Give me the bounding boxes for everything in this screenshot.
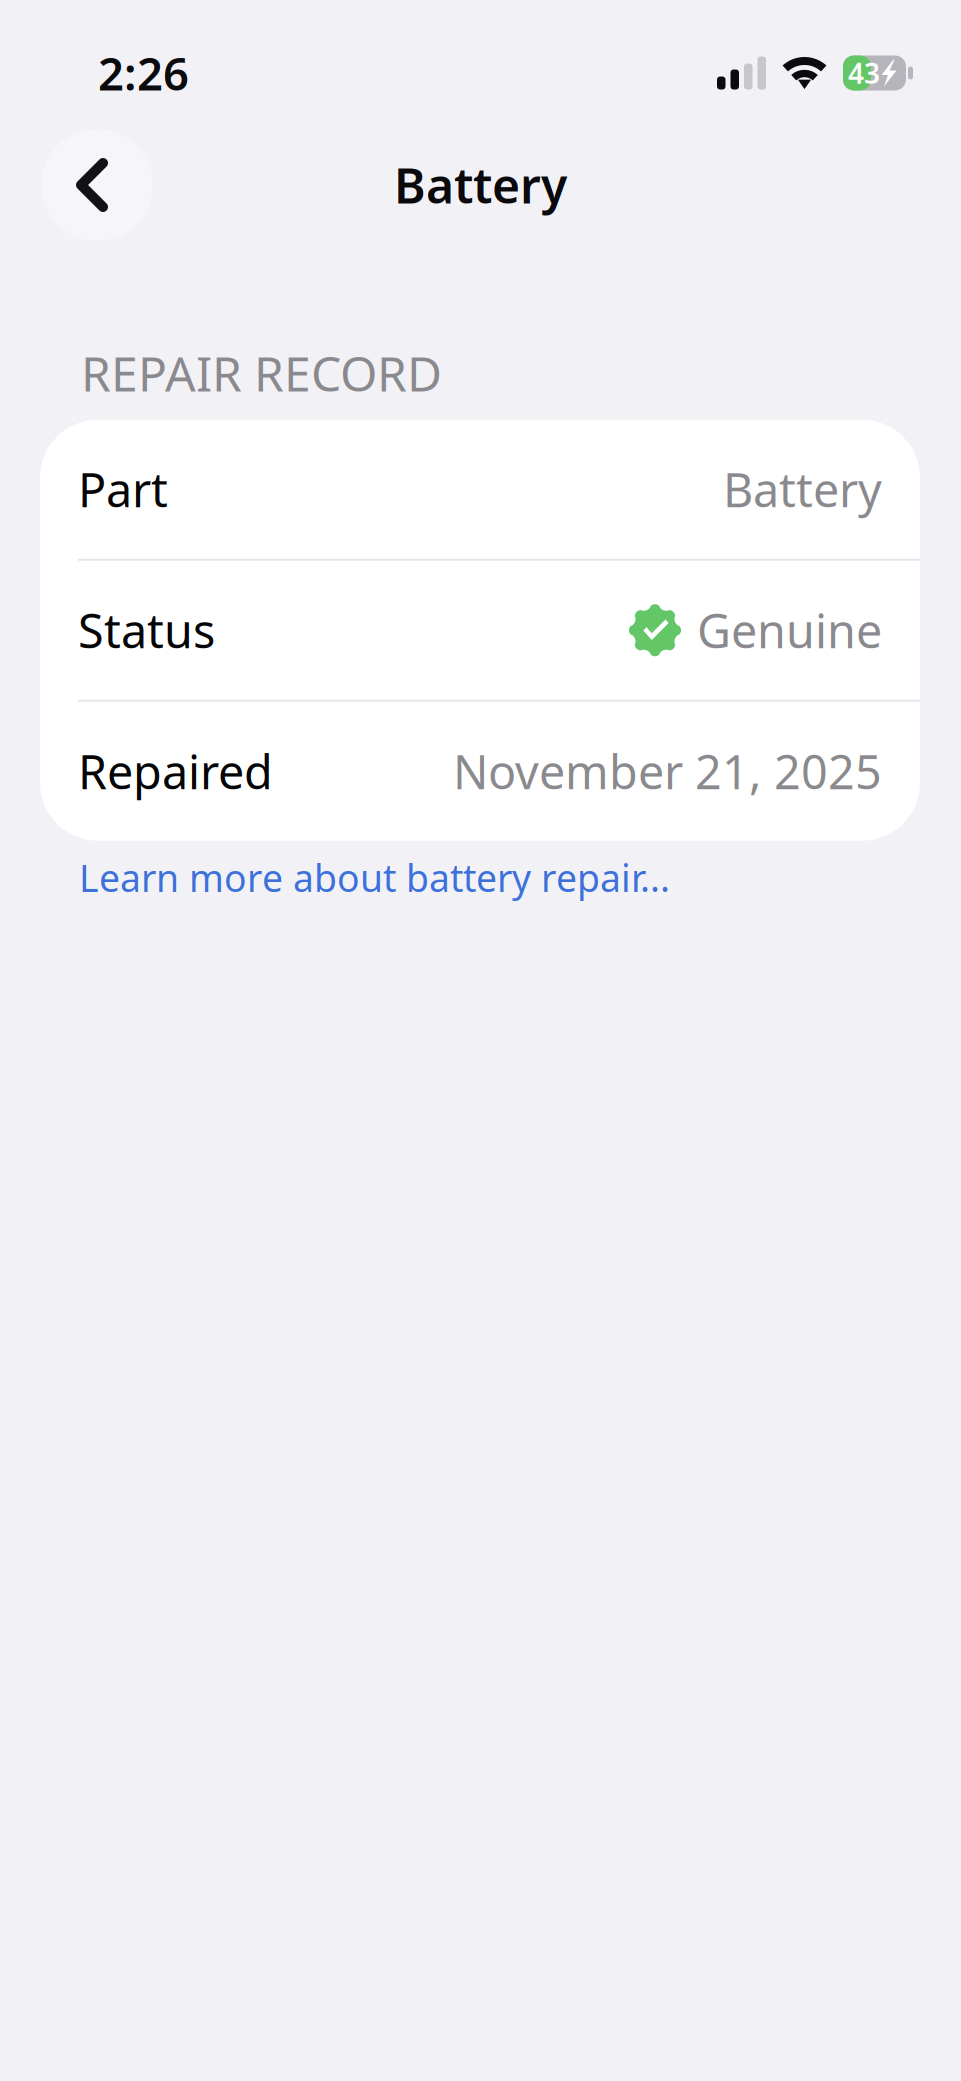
staticText: Status bbox=[78, 599, 215, 661]
staticText: Part bbox=[78, 458, 168, 520]
staticText: Genuine bbox=[697, 599, 882, 661]
staticText: November 21, 2025 bbox=[453, 740, 882, 802]
button[interactable]: Learn more about battery repair... bbox=[0, 841, 710, 908]
staticText: 2:26 bbox=[98, 43, 189, 103]
staticText: Learn more about battery repair... bbox=[79, 853, 670, 902]
staticText: Battery bbox=[394, 153, 567, 217]
staticText: REPAIR RECORD bbox=[81, 341, 442, 405]
staticText: Battery bbox=[723, 458, 882, 520]
staticText: Repaired bbox=[78, 740, 273, 802]
staticText: 43 bbox=[848, 54, 880, 92]
button[interactable]: Back bbox=[41, 129, 153, 241]
